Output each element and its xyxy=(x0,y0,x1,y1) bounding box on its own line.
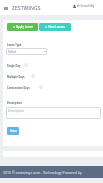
staticText: Save xyxy=(10,129,17,133)
staticText: Select xyxy=(8,50,17,54)
staticText: 2015 © zestwings.com - Technology Powere… xyxy=(3,170,82,175)
staticText: Description xyxy=(8,109,25,113)
staticText: Consecutive Days xyxy=(7,86,30,90)
staticText: View Leaves xyxy=(48,25,65,29)
button[interactable]: Consecutive Days xyxy=(39,85,43,89)
button[interactable]: Select xyxy=(6,48,47,55)
staticText: Leave Type xyxy=(7,43,22,47)
staticText: Single Day xyxy=(7,64,21,68)
button[interactable]: Apply Leave xyxy=(7,23,38,31)
button[interactable]: Save xyxy=(7,127,19,135)
staticText: ZESTWINGS xyxy=(12,5,41,12)
button[interactable]: Hi Suresh Raj xyxy=(73,4,95,8)
staticText: Description xyxy=(7,101,22,105)
staticText: Multiple Days xyxy=(7,75,25,79)
button[interactable]: Menu xyxy=(2,4,10,12)
button[interactable]: Multiple Days xyxy=(31,74,35,78)
button[interactable]: Single Day xyxy=(24,63,28,67)
button[interactable]: Description xyxy=(6,107,101,119)
staticText: Apply Leave xyxy=(16,25,33,29)
button[interactable]: View Leaves xyxy=(39,23,71,31)
staticText: Hi Suresh Raj xyxy=(77,4,95,8)
